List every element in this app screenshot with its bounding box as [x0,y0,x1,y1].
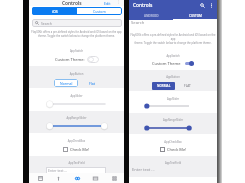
staticText: AppSlider [129,97,217,101]
staticText: AppSwitch [129,54,217,58]
staticText: AppTextField [129,161,217,165]
staticText: FlayUIKit offers a pre-defined styles fo… [130,33,216,45]
button[interactable]: CUSTOM [173,12,217,19]
button[interactable]: Enter text ... [132,167,194,172]
staticText: FlayUIKit offers a pre-defined styles fo… [31,30,122,38]
staticText: iOS [52,9,58,14]
button[interactable]: ANDROID [129,12,173,19]
button[interactable] [63,147,68,152]
staticText: AppCheckBox [129,140,217,144]
button[interactable] [87,56,99,63]
button[interactable]: Search [32,19,122,27]
staticText: Controls [62,0,82,7]
button[interactable]: FLAT [180,82,195,90]
staticText: NORMAL [157,84,171,88]
button[interactable] [184,60,194,66]
staticText: Search [41,21,52,26]
staticText: Custom [93,9,106,14]
staticText: Controls [133,2,153,9]
button[interactable]: Tab 5 [106,173,122,183]
staticText: AppCheckBox [29,139,124,143]
button[interactable]: Tab 1 [32,173,48,183]
staticText: AppRangeSlider [129,118,217,122]
staticText: Check Me! [70,147,90,152]
staticText: AppSwitch [29,49,124,53]
button[interactable]: Normal [54,79,78,87]
button[interactable]: Tab 4 [87,173,103,183]
button[interactable]: Tab 2 [50,173,66,183]
staticText: ANDROID [144,14,159,18]
staticText: AppButton [29,72,124,76]
button[interactable]: Search [198,1,206,9]
staticText: Enter text ... [132,167,155,172]
staticText: Normal [60,81,73,86]
button[interactable]: More options [207,1,215,9]
button[interactable]: Flat [85,79,99,87]
staticText: ⋮ [117,0,121,4]
button[interactable]: iOS [32,7,77,15]
button[interactable] [160,147,165,152]
staticText: AppTextField [29,161,124,165]
staticText: AppButton [129,75,217,79]
staticText: Search [131,20,145,26]
button[interactable]: Custom [77,7,122,15]
staticText: Custom Theme [152,61,181,66]
staticText: Custom Theme: [55,57,85,62]
staticText: AppSlider [29,94,124,98]
staticText: Flat [89,81,95,86]
button[interactable]: Enter text ... [46,167,106,174]
staticText: Enter text ... [48,168,68,173]
staticText: CUSTOM [189,14,202,18]
button[interactable]: Tab 3 [69,173,85,183]
staticText: AppRangeSlider [29,116,124,120]
staticText: FLAT [184,84,191,88]
staticText: Edit [104,1,111,6]
staticText: Check Me! [167,147,187,152]
button[interactable]: NORMAL [152,82,175,90]
